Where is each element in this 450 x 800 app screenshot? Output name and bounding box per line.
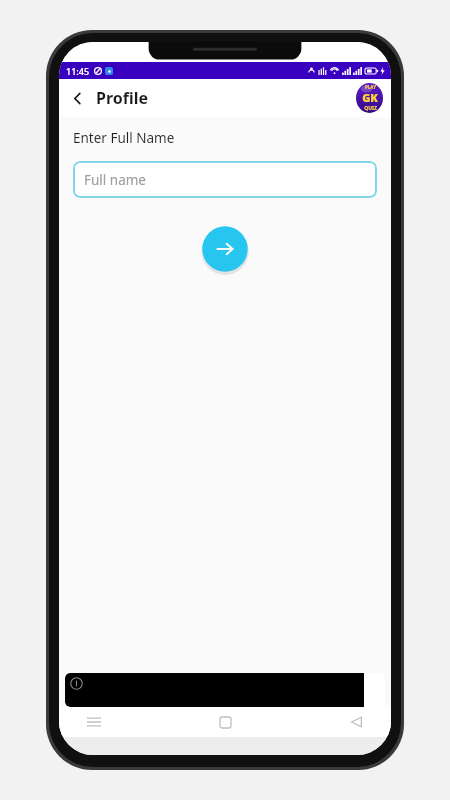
staticText: GK: [362, 90, 378, 105]
staticText: 11:45: [66, 65, 90, 77]
staticText: Full name: [84, 171, 146, 189]
button[interactable]: Full name: [73, 161, 377, 198]
button[interactable]: Recents: [77, 707, 111, 737]
staticText: PLAY: [365, 84, 376, 90]
button[interactable]: Back: [63, 84, 91, 112]
button[interactable]: Play GK Quiz logo: [356, 83, 383, 113]
button[interactable]: Back: [339, 707, 373, 737]
staticText: Enter Full Name: [73, 129, 175, 147]
staticText: QUIZ: [364, 105, 377, 112]
staticText: Profile: [96, 87, 149, 109]
button[interactable]: Advertisement: [65, 673, 385, 707]
button[interactable]: Home: [208, 707, 242, 737]
